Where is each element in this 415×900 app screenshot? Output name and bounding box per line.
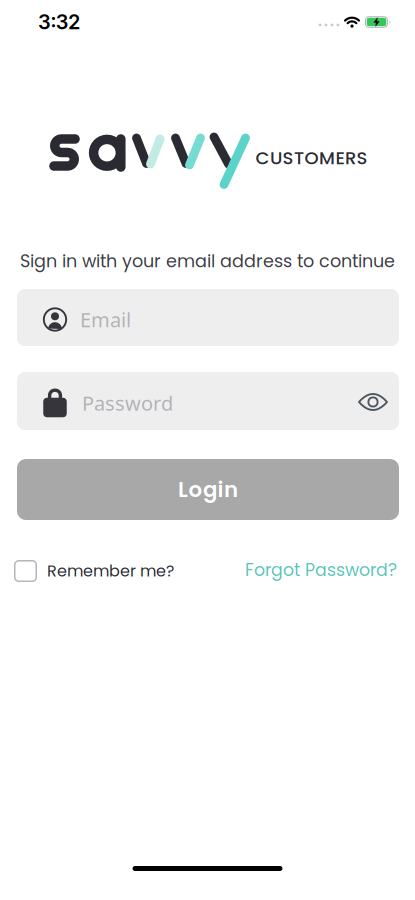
staticText: Login: [178, 475, 238, 504]
staticText: Forgot Password?: [245, 558, 397, 582]
button[interactable]: Forgot Password?: [245, 558, 397, 582]
staticText: Password: [82, 390, 173, 416]
staticText: Remember me?: [47, 560, 174, 582]
staticText: Sign in with your email address to conti…: [20, 249, 395, 273]
button[interactable]: Show password: [351, 382, 395, 422]
staticText: 3:32: [38, 10, 80, 34]
button[interactable]: Email: [17, 289, 399, 346]
button[interactable]: Remember me?: [14, 560, 174, 582]
button[interactable]: Password: [17, 372, 399, 430]
staticText: CUSTOMERS: [255, 145, 367, 171]
button[interactable]: Login: [17, 459, 399, 520]
staticText: Email: [80, 306, 131, 333]
